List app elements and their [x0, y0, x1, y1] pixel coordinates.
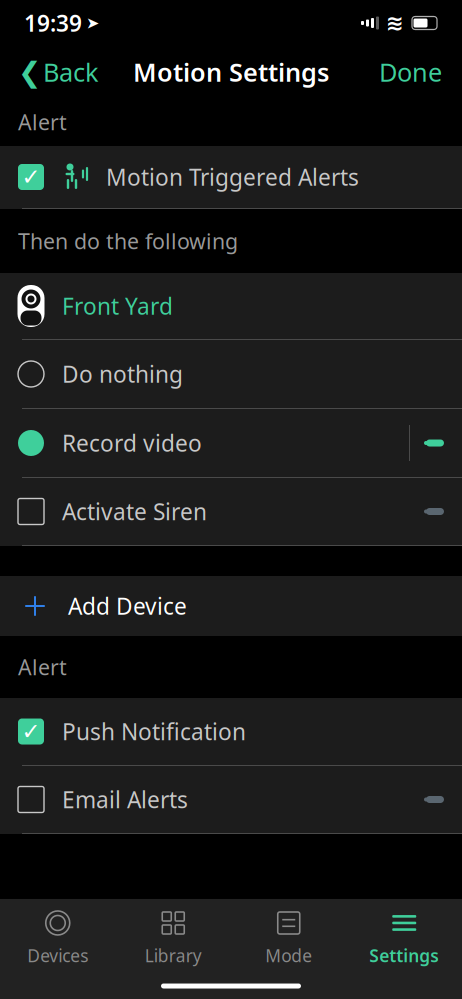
button[interactable]: Add Device	[0, 576, 462, 636]
button[interactable]: Record video	[0, 409, 462, 477]
staticText: Library	[145, 944, 202, 967]
staticText: ❮	[18, 56, 41, 88]
staticText: Alert	[18, 653, 67, 681]
staticText: Record video	[62, 428, 202, 458]
staticText: Mode	[265, 944, 312, 967]
staticText: Push Notification	[62, 716, 246, 746]
button[interactable]: ✓	[0, 698, 462, 765]
staticText: ✓	[21, 164, 40, 190]
staticText: 19:39	[24, 8, 82, 38]
staticText: Devices	[27, 944, 88, 967]
staticText: Back	[43, 55, 99, 89]
button[interactable]: ❮	[4, 46, 113, 98]
staticText: ≋	[386, 11, 404, 35]
button[interactable]: Front Yard	[0, 273, 462, 339]
button[interactable]: Library	[115, 899, 231, 973]
button[interactable]: Do nothing	[0, 340, 462, 408]
button[interactable]: Email Alerts	[0, 766, 462, 833]
button[interactable]: ✓	[0, 146, 462, 208]
staticText: Motion Settings	[133, 55, 329, 89]
staticText: ➤	[86, 14, 99, 32]
staticText: Activate Siren	[62, 496, 207, 526]
button[interactable]: Activate Siren	[0, 478, 462, 545]
staticText: Front Yard	[62, 291, 173, 321]
staticText: Then do the following	[18, 227, 238, 255]
staticText: Email Alerts	[62, 784, 188, 814]
staticText: ✓	[21, 719, 40, 744]
staticText: Do nothing	[62, 359, 183, 389]
button[interactable]: Settings	[346, 899, 462, 973]
button[interactable]: Devices	[0, 899, 115, 973]
button[interactable]: Mode	[231, 899, 346, 973]
staticText: Settings	[369, 944, 439, 967]
staticText: Done	[379, 55, 442, 89]
staticText: Alert	[18, 108, 67, 136]
button[interactable]: Done	[363, 46, 458, 98]
staticText: Add Device	[68, 591, 187, 621]
staticText: Motion Triggered Alerts	[106, 162, 359, 192]
